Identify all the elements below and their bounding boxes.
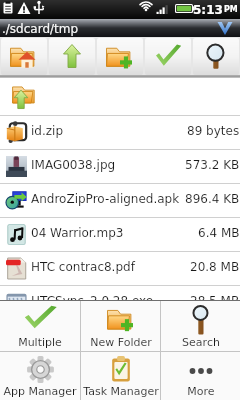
staticText: Search [182, 336, 220, 349]
staticText: App Manager [3, 385, 77, 398]
button[interactable]: Multiple [0, 301, 80, 351]
staticText: 28.5 MB [190, 294, 240, 308]
staticText: HTC contrac8.pdf [31, 260, 190, 274]
staticText: 04 Warrior.mp3 [31, 226, 198, 240]
button[interactable]: Search [161, 301, 240, 351]
button[interactable]: IMAG0038.jpg [0, 150, 240, 183]
staticText: 6.4 MB [198, 226, 240, 240]
staticText: PM [224, 5, 238, 14]
button[interactable]: id.zip [0, 116, 240, 149]
button[interactable]: New Folder [81, 301, 160, 351]
staticText: HTCSync_2.0.28.exe [31, 294, 190, 308]
staticText: Task Manager [83, 385, 159, 398]
button[interactable]: 04 Warrior.mp3 [0, 218, 240, 251]
staticText: New Folder [90, 336, 152, 349]
staticText: 89 bytes [187, 124, 240, 138]
button[interactable]: New folder [97, 38, 143, 75]
button[interactable]: AndroZipPro-aligned.apk [0, 184, 240, 217]
staticText: More [187, 385, 215, 398]
button[interactable]: Up one level [49, 38, 95, 75]
staticText: Multiple [18, 336, 62, 349]
staticText: 896.4 KB [185, 192, 240, 206]
button[interactable]: Home folder [1, 38, 47, 75]
button[interactable]: More [161, 352, 240, 400]
button[interactable]: Select items [145, 38, 191, 75]
staticText: AndroZipPro-aligned.apk [31, 192, 185, 206]
button[interactable]: Task Manager [81, 352, 160, 400]
staticText: 573.2 KB [185, 158, 240, 172]
button[interactable]: Search [193, 38, 239, 75]
staticText: id.zip [31, 124, 187, 138]
button[interactable]: HTCSync_2.0.28.exe [0, 286, 240, 319]
staticText: 20.8 MB [190, 260, 240, 274]
staticText: 5:13 [193, 3, 223, 17]
staticText: ./sdcard/tmp [2, 22, 79, 36]
staticText: IMAG0038.jpg [31, 158, 185, 172]
button[interactable]: Parent folder [1, 80, 47, 113]
button[interactable]: HTC contrac8.pdf [0, 252, 240, 285]
button[interactable]: App logo [210, 19, 240, 37]
button[interactable]: App Manager [0, 352, 80, 400]
